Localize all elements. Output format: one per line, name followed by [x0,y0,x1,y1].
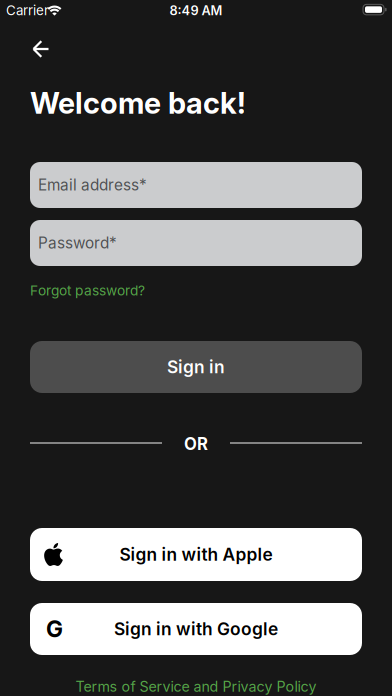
staticText: Carrier [6,2,49,18]
button[interactable] [19,27,63,71]
staticText: Welcome back! [30,85,246,121]
button[interactable]: Email address* [30,162,362,208]
staticText: Email address* [38,176,147,194]
button[interactable]: Sign in [30,341,362,393]
button[interactable]: Password* [30,220,362,266]
staticText: Password* [38,234,117,252]
staticText: 8:49 AM [169,3,222,18]
button[interactable]: Terms of Service and Privacy Policy [75,678,316,695]
button[interactable]: Sign in with Google [30,603,362,655]
staticText: OR [184,434,208,454]
staticText: Terms of Service and Privacy Policy [75,678,316,695]
staticText: G [46,615,63,643]
staticText: Forgot password? [30,282,145,299]
button[interactable]: Forgot password? [30,282,362,299]
staticText: Sign in [167,356,225,377]
staticText: Sign in with Google [114,618,278,639]
button[interactable]: Sign in with Apple [30,528,362,581]
staticText: Sign in with Apple [119,544,272,565]
